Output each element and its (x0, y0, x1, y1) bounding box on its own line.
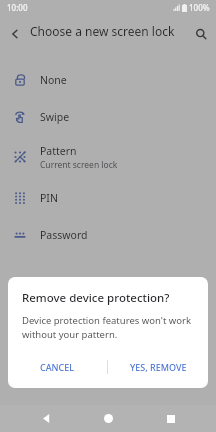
staticText: Password (40, 228, 88, 242)
button[interactable]: Password (0, 216, 216, 253)
button[interactable]: CANCEL (8, 351, 107, 383)
button[interactable]: YES, REMOVE (108, 351, 208, 383)
button[interactable]: Swipe (0, 98, 216, 135)
button[interactable]: Back (29, 405, 63, 432)
staticText: YES, REMOVE (130, 361, 187, 373)
staticText: 100% (189, 2, 210, 13)
staticText: Current screen lock (40, 159, 118, 171)
staticText: None (40, 73, 67, 87)
button[interactable]: PIN (0, 179, 216, 216)
staticText: 10:00 (7, 2, 28, 13)
button[interactable]: Navigate up (0, 19, 30, 49)
staticText: CANCEL (40, 361, 75, 373)
button[interactable]: None (0, 61, 216, 98)
staticText: Remove device protection? (22, 290, 170, 306)
button[interactable]: Search (186, 19, 216, 49)
staticText: Choose a new screen lock (30, 23, 182, 39)
staticText: Pattern (40, 144, 77, 158)
staticText: PIN (40, 191, 58, 205)
staticText: Device protection features won't work wi… (22, 314, 196, 340)
button[interactable]: Recent apps (154, 405, 188, 432)
staticText: Swipe (40, 110, 70, 124)
button[interactable]: Home (91, 405, 125, 432)
button[interactable]: Pattern (0, 135, 216, 179)
